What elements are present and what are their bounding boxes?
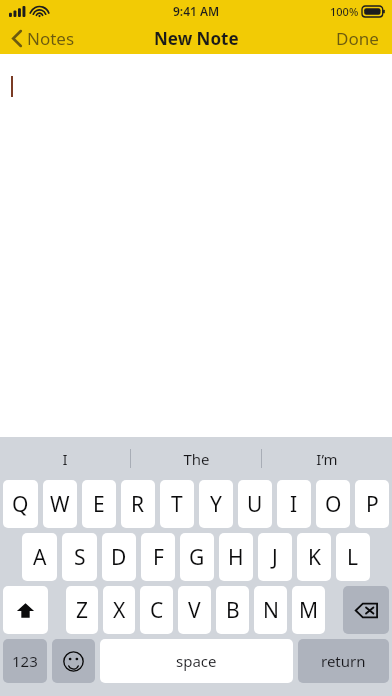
staticText: I’m (316, 449, 338, 469)
button[interactable]: M (292, 586, 325, 634)
staticText: N (263, 596, 279, 625)
button[interactable]: S (62, 533, 97, 581)
staticText: The (183, 449, 210, 469)
staticText: Z (76, 596, 89, 625)
staticText: I (290, 490, 298, 519)
button[interactable]: F (141, 533, 175, 581)
staticText: New Note (154, 27, 239, 50)
button[interactable]: space (100, 639, 293, 683)
staticText: O (325, 490, 342, 519)
button[interactable]: Z (66, 586, 98, 634)
button[interactable]: I (0, 437, 130, 480)
staticText: R (131, 490, 145, 519)
staticText: L (347, 543, 359, 572)
staticText: S (74, 543, 86, 572)
staticText: U (247, 490, 263, 519)
staticText: B (226, 596, 240, 625)
staticText: V (188, 596, 201, 625)
button[interactable]: I (277, 480, 311, 528)
staticText: G (189, 543, 205, 572)
staticText: Notes (27, 27, 75, 50)
staticText: Q (12, 490, 29, 519)
staticText: return (321, 651, 366, 671)
staticText: 9:41 AM (173, 3, 220, 19)
staticText: K (308, 543, 321, 572)
button[interactable]: A (22, 533, 57, 581)
button[interactable]: I’m (262, 437, 392, 480)
button[interactable]: J (258, 533, 292, 581)
button[interactable]: P (355, 480, 389, 528)
button[interactable]: C (140, 586, 173, 634)
staticText: J (272, 543, 278, 572)
button[interactable]: H (219, 533, 253, 581)
staticText: P (366, 490, 379, 519)
button[interactable]: T (160, 480, 194, 528)
button[interactable]: L (336, 533, 370, 581)
staticText: 100% (330, 4, 359, 19)
staticText: C (150, 596, 164, 625)
staticText: W (50, 490, 70, 519)
button[interactable]: N (254, 586, 287, 634)
staticText: D (111, 543, 127, 572)
button[interactable]: Done (332, 23, 383, 54)
button[interactable]: Emoji keyboard (52, 639, 95, 683)
staticText: space (176, 651, 217, 671)
staticText: H (228, 543, 244, 572)
button[interactable]: The (131, 437, 261, 480)
button[interactable]: R (121, 480, 155, 528)
staticText: E (93, 490, 105, 519)
button[interactable]: E (82, 480, 116, 528)
button[interactable]: V (178, 586, 211, 634)
staticText: F (153, 543, 164, 572)
staticText: Y (210, 490, 222, 519)
button[interactable]: Q (3, 480, 38, 528)
button[interactable]: U (238, 480, 272, 528)
button[interactable]: O (316, 480, 350, 528)
staticText: A (33, 543, 47, 572)
button[interactable]: 123 (3, 639, 47, 683)
button[interactable]: X (103, 586, 135, 634)
button[interactable]: Notes (9, 24, 78, 53)
staticText: X (113, 596, 126, 625)
button[interactable]: Y (199, 480, 233, 528)
button[interactable]: D (102, 533, 136, 581)
staticText: T (171, 490, 183, 519)
staticText: 123 (12, 651, 38, 671)
button[interactable]: Shift (3, 586, 48, 634)
button[interactable]: W (43, 480, 77, 528)
staticText: M (299, 596, 319, 625)
staticText: I (62, 449, 68, 469)
staticText: Done (336, 27, 379, 50)
button[interactable]: K (297, 533, 331, 581)
button[interactable]: Delete (343, 586, 389, 634)
button[interactable]: B (216, 586, 249, 634)
button[interactable]: G (180, 533, 214, 581)
button[interactable]: return (298, 639, 389, 683)
